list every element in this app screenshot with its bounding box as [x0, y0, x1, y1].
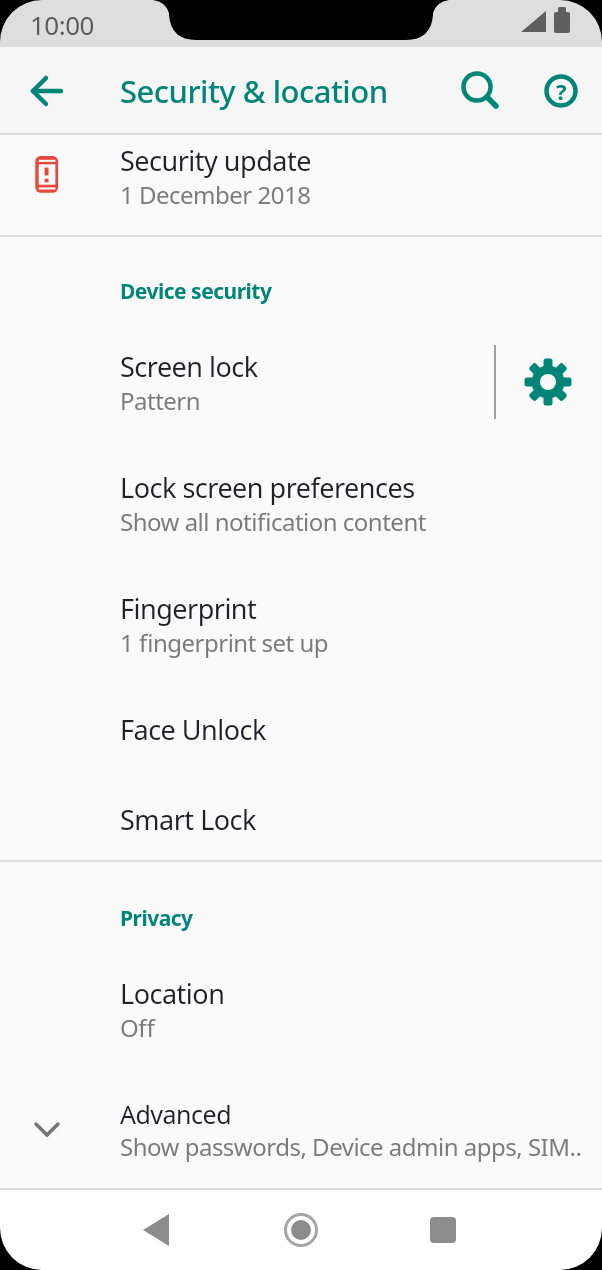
- staticText: Show passwords, Device admin apps, SIM..: [120, 1130, 582, 1163]
- button[interactable]: [0, 452, 602, 556]
- staticText: Pattern: [120, 384, 201, 417]
- button[interactable]: [0, 774, 602, 862]
- staticText: Lock screen preferences: [120, 469, 415, 506]
- staticText: Show all notification content: [120, 505, 426, 538]
- staticText: Smart Lock: [120, 801, 256, 838]
- button[interactable]: ?: [529, 59, 593, 123]
- staticText: Location: [120, 975, 225, 1012]
- staticText: Face Unlock: [120, 711, 266, 748]
- staticText: Device security: [120, 277, 272, 306]
- staticText: Security update: [120, 142, 311, 179]
- button[interactable]: [0, 330, 494, 434]
- staticText: 1 December 2018: [120, 178, 311, 211]
- button[interactable]: [0, 958, 602, 1062]
- button[interactable]: [124, 1198, 188, 1262]
- button[interactable]: [516, 350, 580, 414]
- staticText: Security & location: [120, 70, 388, 112]
- button[interactable]: [15, 59, 79, 123]
- button[interactable]: [0, 573, 602, 677]
- staticText: Screen lock: [120, 348, 258, 385]
- staticText: ?: [556, 76, 567, 106]
- staticText: 10:00: [30, 7, 94, 42]
- button[interactable]: [449, 59, 513, 123]
- staticText: Off: [120, 1011, 155, 1044]
- button[interactable]: [0, 1080, 602, 1188]
- staticText: Fingerprint: [120, 590, 257, 627]
- button[interactable]: [411, 1198, 475, 1262]
- button[interactable]: [0, 684, 602, 774]
- button[interactable]: [269, 1198, 333, 1262]
- staticText: Advanced: [120, 1097, 232, 1131]
- staticText: 1 fingerprint set up: [120, 626, 329, 659]
- button[interactable]: [0, 135, 602, 236]
- staticText: Privacy: [120, 904, 193, 933]
